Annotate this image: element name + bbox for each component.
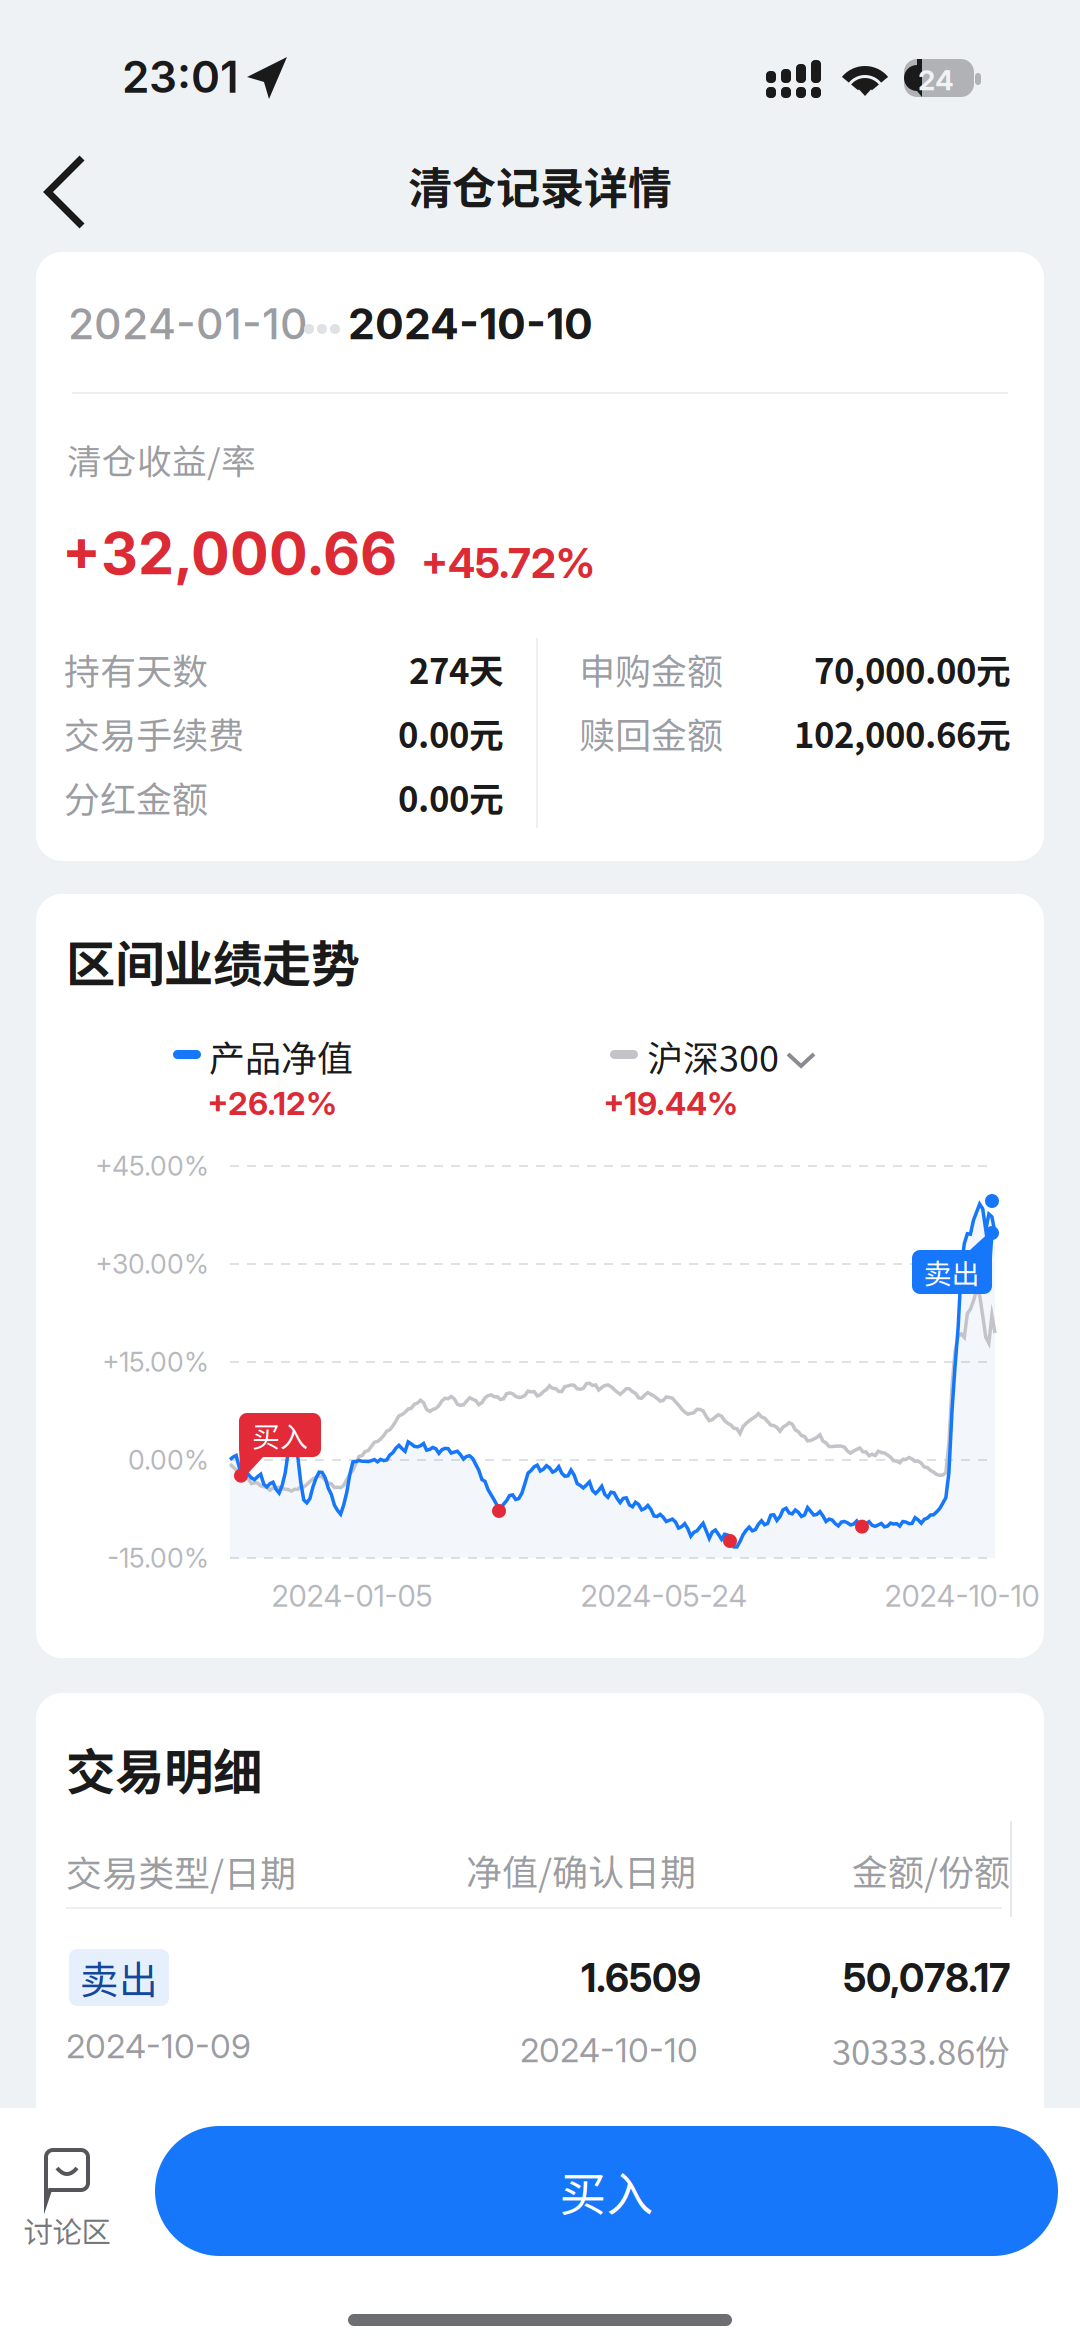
staticText: 申购金额 [579,643,723,695]
staticText: +45.00% [95,1150,209,1182]
staticText: 讨论区 [23,2209,110,2251]
staticText: 赎回金额 [579,707,723,759]
staticText: 持有天数 [64,643,208,695]
staticText: 50,078.17 [843,1955,1010,2001]
staticText: 清仓收益/率 [67,434,256,484]
button[interactable]: 返回 [0,134,136,252]
staticText: +32,000.66 [62,519,397,588]
staticText: -15.00% [107,1542,209,1574]
staticText: 0.00% [128,1444,209,1476]
staticText: 卖出 [923,1252,979,1292]
staticText: 2024-10-10 [348,298,593,350]
button[interactable]: 讨论区 [0,2108,150,2268]
staticText: 0.00元 [398,708,504,758]
staticText: 102,000.66元 [794,708,1011,758]
staticText: 274天 [409,644,504,694]
staticText: 0.00元 [398,772,504,822]
staticText: 70,000.00元 [814,644,1011,694]
staticText: 23:01 [122,50,239,103]
staticText: +30.00% [95,1248,209,1280]
staticText: 净值/确认日期 [466,1844,696,1896]
staticText: +45.72% [421,538,595,588]
staticText: 2024-05-24 [580,1578,747,1614]
staticText: 买入 [559,2157,653,2225]
staticText: 清仓记录详情 [408,153,672,217]
staticText: 买入 [252,1415,308,1455]
staticText: 30333.86份 [832,2025,1010,2075]
staticText: 交易手续费 [64,707,244,759]
staticText: 2024-01-05 [271,1578,432,1614]
staticText: 金额/份额 [852,1844,1010,1896]
staticText: +15.00% [102,1346,209,1378]
staticText: 2024-10-10 [884,1578,1039,1614]
staticText: 24 [918,63,954,97]
staticText: 1.6509 [581,1955,701,2001]
staticText: 2024-10-10 [520,2030,698,2070]
staticText: 交易类型/日期 [66,1845,296,1897]
staticText: 分红金额 [64,771,208,823]
staticText: 区间业绩走势 [66,925,360,996]
button[interactable]: 买入 [155,2126,1058,2256]
staticText: 沪深300 [647,1030,779,1082]
staticText: +26.12% [207,1084,337,1123]
staticText: 产品净值 [209,1030,353,1082]
staticText: 2024-01-10 [68,298,308,350]
staticText: 2024-10-09 [66,2026,251,2066]
staticText: +19.44% [603,1084,738,1123]
staticText: 交易明细 [66,1733,262,1804]
staticText: 卖出 [80,1949,158,2005]
